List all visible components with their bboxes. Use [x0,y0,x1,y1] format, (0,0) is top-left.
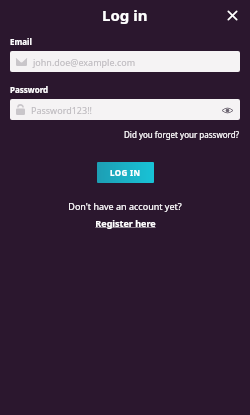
button[interactable]: LOG IN [97,162,154,183]
button[interactable]: Did you forget your password? [124,129,240,140]
staticText: Password [10,84,49,95]
staticText: Don't have an account yet? [68,200,182,212]
staticText: LOG IN [110,167,141,178]
staticText: john.doe@example.com [33,56,136,68]
button[interactable]: Password123!! [10,99,240,120]
staticText: Password123!! [31,104,220,116]
button[interactable]: Register here [95,217,156,229]
button[interactable]: Close [220,3,244,27]
staticText: Register here [95,217,156,229]
button[interactable]: Show password [220,103,234,117]
button[interactable]: john.doe@example.com [10,51,240,72]
staticText: Log in [102,5,148,25]
staticText: Email [10,36,32,47]
